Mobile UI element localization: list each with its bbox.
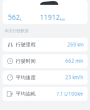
staticText: L (20, 17, 22, 22)
button[interactable]: 行驶时间 (2, 54, 87, 68)
button[interactable]: 行驶里程 (2, 38, 87, 52)
button[interactable]: 平均速度 (2, 71, 87, 84)
staticText: 562 (8, 13, 20, 22)
staticText: 23 km/h (65, 74, 83, 81)
staticText: 平均油耗 (16, 91, 36, 97)
staticText: 662 min (65, 58, 83, 64)
staticText: 7.1 L/100km (56, 91, 83, 97)
staticText: 行驶时间 (16, 58, 36, 64)
button[interactable]: 平均油耗 (2, 87, 87, 101)
staticText: 269 km (67, 42, 83, 48)
staticText: 本次行驶数据 (4, 28, 28, 33)
staticText: 行驶里程 (16, 42, 36, 48)
staticText: km (60, 17, 65, 22)
staticText: 11912 (40, 13, 60, 22)
staticText: 平均速度 (16, 74, 36, 81)
